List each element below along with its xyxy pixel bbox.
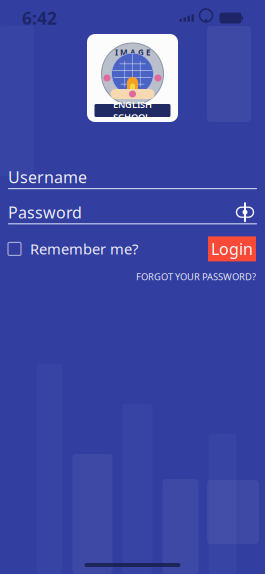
button[interactable]: Login bbox=[208, 236, 256, 261]
staticText: 6:42 bbox=[22, 6, 57, 29]
staticText: ENGLISH SCHOOL bbox=[113, 98, 152, 123]
staticText: Username bbox=[8, 166, 87, 188]
staticText: Password bbox=[8, 202, 82, 223]
staticText: FORGOT YOUR PASSWORD? bbox=[136, 270, 256, 283]
button[interactable]: FORGOT YOUR PASSWORD? bbox=[132, 267, 260, 286]
staticText: Login bbox=[211, 238, 253, 259]
staticText: Remember me? bbox=[30, 239, 138, 259]
staticText: I M A G E bbox=[115, 47, 150, 58]
button[interactable]: Show password bbox=[233, 201, 257, 223]
button[interactable]: Remember me? bbox=[0, 233, 146, 265]
